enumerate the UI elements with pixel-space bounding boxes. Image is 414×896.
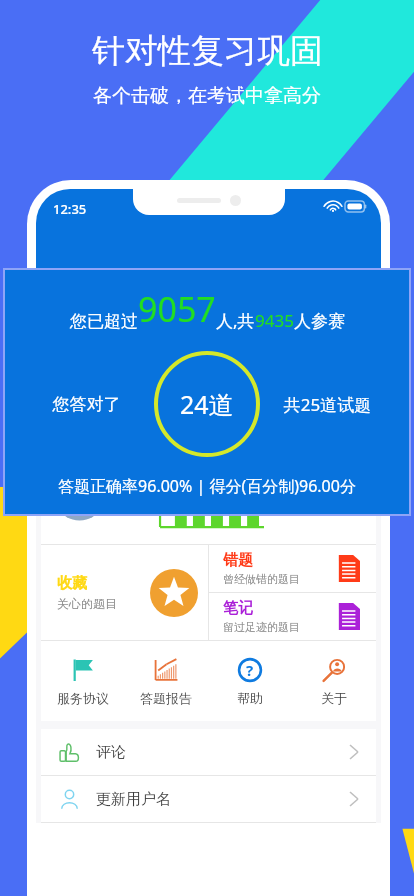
- staticText: 曾经做错的题目: [223, 572, 300, 586]
- staticText: 人参赛: [294, 311, 345, 332]
- button[interactable]: 笔记: [209, 593, 376, 640]
- button[interactable]: 关于: [292, 641, 376, 721]
- staticText: 您已超过: [70, 311, 138, 332]
- staticText: 留过足迹的题目: [223, 620, 300, 634]
- staticText: 12:35: [53, 200, 87, 218]
- staticText: 共25道试题: [260, 393, 395, 416]
- staticText: +45: [172, 486, 185, 496]
- staticText: 答题正确率96.00% | 得分(百分制)96.00分: [5, 475, 409, 497]
- staticText: 您答对了: [19, 394, 154, 415]
- staticText: 24道: [180, 387, 234, 421]
- button[interactable]: 评论: [41, 729, 376, 775]
- button[interactable]: 答题报告: [124, 641, 208, 721]
- staticText: 笔记: [223, 599, 253, 618]
- staticText: 关于: [321, 690, 347, 706]
- staticText: 评论: [96, 743, 350, 762]
- staticText: 错题: [223, 551, 253, 570]
- staticText: +49: [226, 483, 239, 493]
- staticText: 9435: [255, 309, 294, 332]
- staticText: +30: [244, 492, 257, 502]
- staticText: 人,共: [216, 309, 255, 332]
- button[interactable]: 错题: [209, 545, 376, 592]
- staticText: 各个击破，在考试中拿高分: [93, 84, 321, 108]
- button[interactable]: 服务协议: [41, 641, 124, 721]
- staticText: ?: [246, 660, 254, 680]
- staticText: 收藏: [57, 574, 87, 593]
- staticText: +58: [208, 478, 221, 488]
- button[interactable]: 收藏: [41, 545, 208, 640]
- staticText: 帮助: [237, 690, 263, 706]
- staticText: 服务协议: [57, 690, 109, 706]
- staticText: 答题报告: [140, 690, 192, 706]
- staticText: 9057: [138, 286, 216, 332]
- button[interactable]: ?: [208, 641, 292, 721]
- staticText: 关心的题目: [57, 596, 117, 611]
- staticText: 针对性复习巩固: [92, 30, 323, 72]
- staticText: 更新用户名: [96, 790, 350, 809]
- button[interactable]: 更新用户名: [41, 776, 376, 822]
